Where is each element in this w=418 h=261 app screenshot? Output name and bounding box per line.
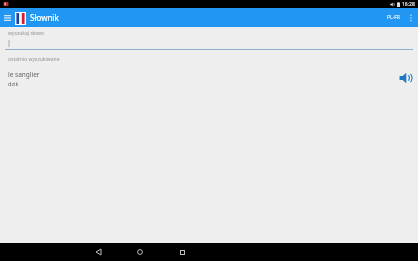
button[interactable]: More options xyxy=(406,8,415,27)
staticText: ostatnio wyszukiwane xyxy=(8,56,60,63)
button[interactable]: Dictionary language xyxy=(14,11,26,25)
staticText: 16:28 xyxy=(402,1,415,8)
button[interactable]: le sanglier xyxy=(0,68,418,88)
staticText: dzik xyxy=(8,80,19,87)
button[interactable]: Home xyxy=(133,245,147,259)
staticText: le sanglier xyxy=(8,70,40,79)
staticText: PL-FR xyxy=(387,14,400,21)
button[interactable]: Open navigation drawer xyxy=(2,8,13,27)
staticText: wyszukaj słowo xyxy=(8,30,44,37)
button[interactable]: Back xyxy=(91,245,105,259)
staticText: Słownik xyxy=(30,12,59,23)
button[interactable]: Recent apps xyxy=(175,245,189,259)
button[interactable]: PL-FR xyxy=(385,10,402,25)
button[interactable]: Play pronunciation xyxy=(398,68,414,88)
